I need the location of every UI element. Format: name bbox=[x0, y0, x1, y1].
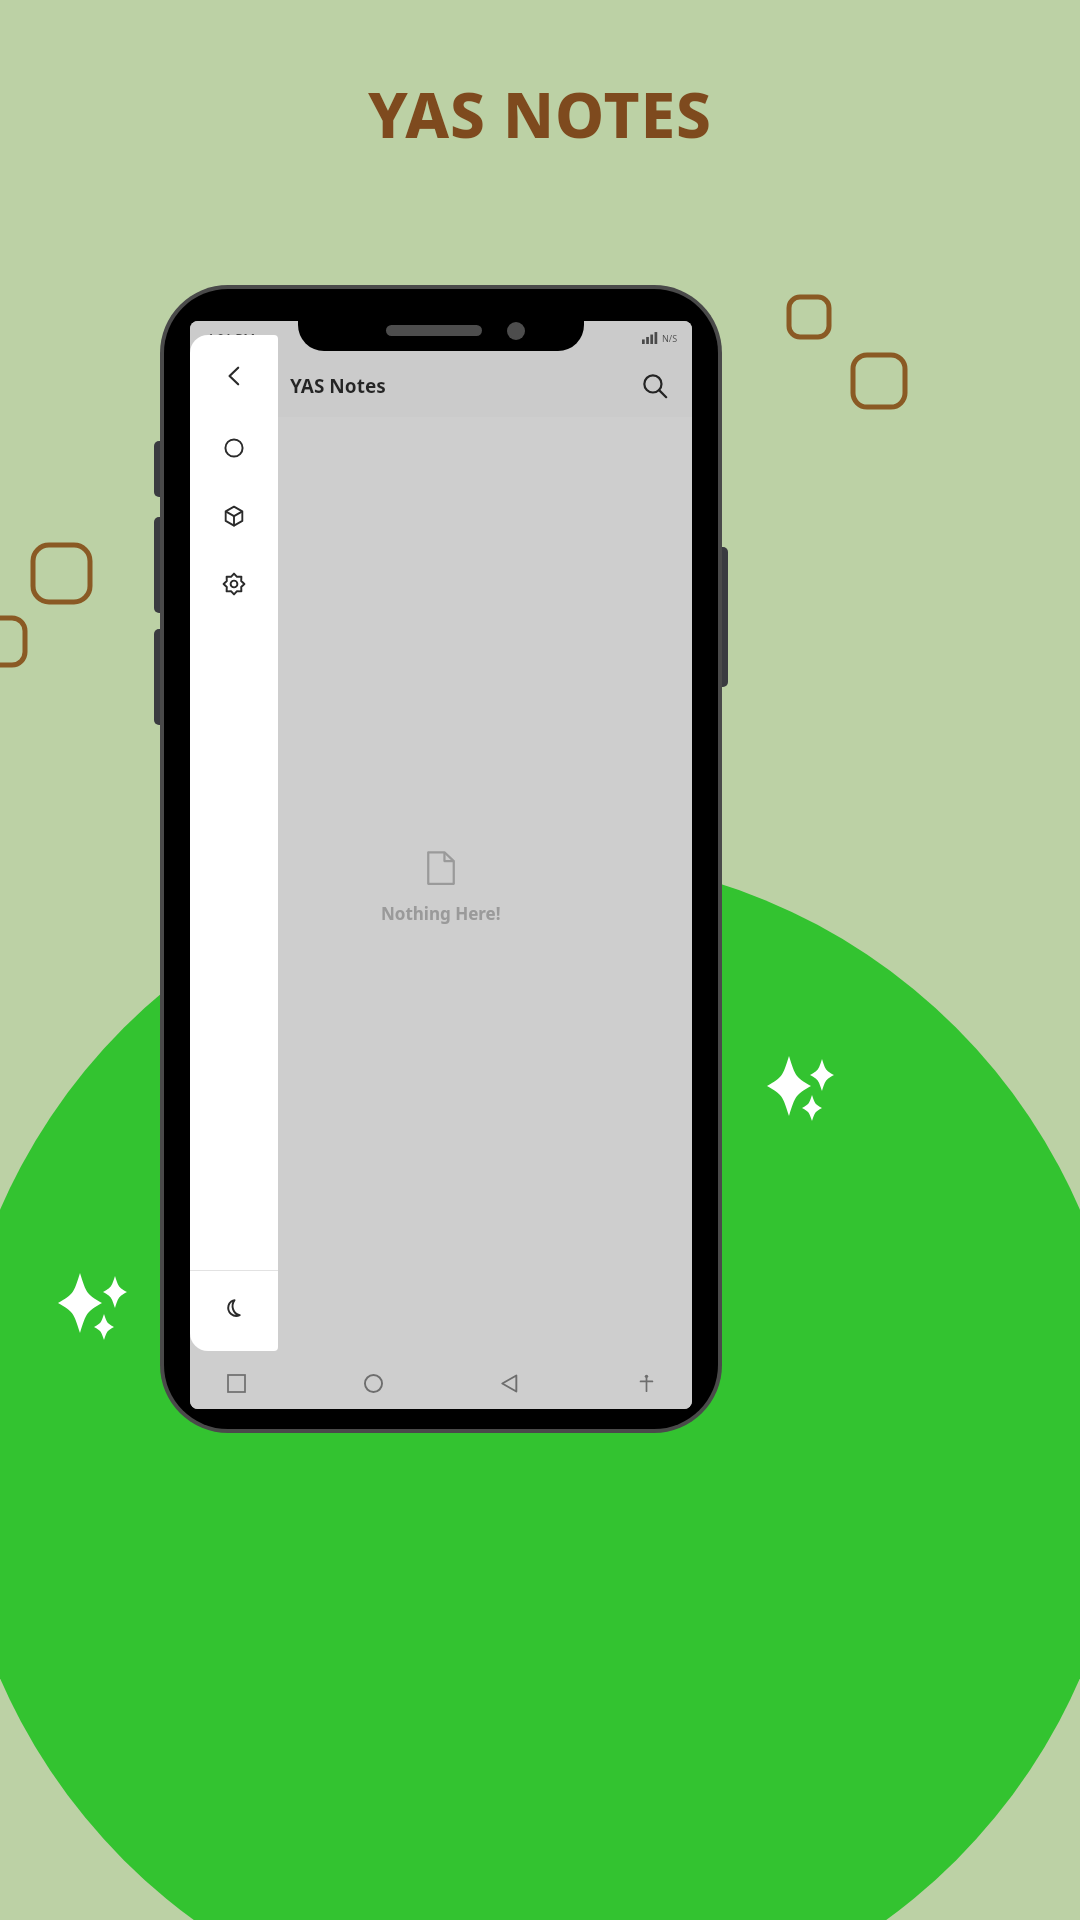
button[interactable]: Keyboard bbox=[626, 1363, 666, 1403]
staticText: YAS Notes bbox=[290, 373, 386, 399]
staticText: 4:01 PM bbox=[206, 329, 256, 347]
staticText: N/S bbox=[662, 332, 678, 344]
button[interactable]: Dark mode bbox=[211, 1287, 257, 1333]
button[interactable]: Search bbox=[632, 363, 678, 409]
staticText: YAS NOTES bbox=[368, 72, 712, 156]
button[interactable]: Back bbox=[489, 1363, 529, 1403]
button[interactable]: Settings bbox=[211, 561, 257, 607]
button[interactable]: Back bbox=[211, 353, 257, 399]
button[interactable]: Notes bbox=[211, 425, 257, 471]
button[interactable]: Archive bbox=[211, 493, 257, 539]
button[interactable]: Recents bbox=[216, 1363, 256, 1403]
staticText: Nothing Here! bbox=[381, 902, 501, 925]
button[interactable]: Home bbox=[353, 1363, 393, 1403]
